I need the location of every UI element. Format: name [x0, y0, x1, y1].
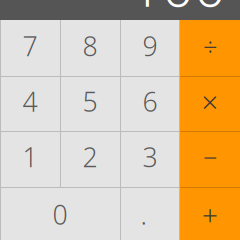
- button[interactable]: .: [120, 187, 180, 240]
- staticText: −: [203, 140, 217, 174]
- staticText: ÷: [203, 29, 217, 63]
- button[interactable]: Add: [180, 187, 240, 240]
- staticText: 5: [82, 84, 97, 119]
- staticText: 4: [22, 84, 37, 119]
- button[interactable]: 4: [0, 76, 60, 131]
- staticText: ×: [201, 82, 218, 121]
- button[interactable]: 5: [60, 76, 120, 131]
- button[interactable]: Subtract: [180, 131, 240, 187]
- button[interactable]: 9: [120, 20, 180, 76]
- staticText: 3: [142, 139, 157, 175]
- button[interactable]: 1: [0, 131, 60, 187]
- button[interactable]: 8: [60, 20, 120, 76]
- button[interactable]: 6: [120, 76, 180, 131]
- staticText: 2: [82, 139, 97, 175]
- button[interactable]: 0: [0, 187, 120, 240]
- button[interactable]: Multiply: [180, 76, 240, 131]
- staticText: 8: [82, 28, 97, 64]
- staticText: 7: [22, 28, 37, 64]
- staticText: 0: [52, 197, 67, 232]
- button[interactable]: 2: [60, 131, 120, 187]
- staticText: +: [202, 196, 218, 233]
- staticText: 9: [142, 28, 157, 64]
- staticText: 100: [130, 0, 226, 22]
- staticText: .: [140, 197, 147, 232]
- button[interactable]: Divide: [180, 20, 240, 76]
- button[interactable]: 3: [120, 131, 180, 187]
- staticText: 6: [142, 84, 157, 119]
- button[interactable]: 7: [0, 20, 60, 76]
- staticText: 1: [22, 139, 37, 175]
